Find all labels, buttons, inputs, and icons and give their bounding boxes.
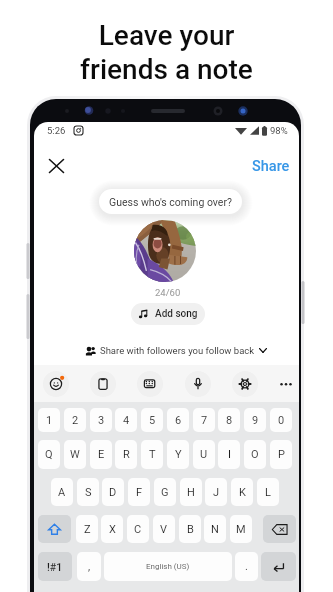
button[interactable]: 7 [193, 408, 215, 432]
staticText: H [187, 486, 195, 499]
button[interactable]: N [204, 515, 226, 543]
staticText: . [245, 560, 248, 573]
button[interactable]: D [102, 478, 124, 506]
staticText: 5:26 [47, 125, 66, 136]
button[interactable]: R [115, 440, 137, 469]
button[interactable]: V [153, 515, 175, 543]
button[interactable]: K [231, 478, 253, 506]
staticText: T [149, 448, 156, 461]
staticText: V [160, 523, 168, 536]
staticText: D [109, 486, 117, 499]
staticText: 4 [123, 414, 130, 427]
staticText: Guess who's coming over? [109, 196, 232, 208]
button[interactable]: A [51, 478, 73, 506]
button[interactable]: Settings [232, 371, 258, 397]
button[interactable]: B [179, 515, 201, 543]
staticText: Leave your friends a note [80, 19, 253, 85]
staticText: S [85, 486, 92, 499]
button[interactable]: Keyboard mode [137, 371, 163, 397]
button[interactable]: !#1 [38, 552, 72, 581]
button[interactable]: Z [76, 515, 98, 543]
button[interactable]: 9 [244, 408, 266, 432]
button[interactable]: J [205, 478, 227, 506]
staticText: , [88, 560, 91, 573]
staticText: U [200, 448, 208, 461]
button[interactable]: 1 [38, 408, 60, 432]
staticText: E [98, 448, 105, 461]
staticText: 9 [252, 414, 259, 427]
staticText: 6 [175, 414, 182, 427]
button[interactable]: Shift [38, 515, 71, 543]
staticText: G [161, 486, 169, 499]
staticText: R [123, 448, 130, 461]
staticText: Share with followers you follow back [100, 345, 255, 356]
button[interactable]: X [101, 515, 123, 543]
staticText: English (US) [146, 562, 190, 571]
button[interactable]: Y [167, 440, 189, 469]
button[interactable]: S [77, 478, 99, 506]
staticText: M [236, 523, 246, 536]
button[interactable]: 2 [64, 408, 86, 432]
button[interactable]: T [141, 440, 163, 469]
staticText: 1 [46, 414, 53, 427]
button[interactable]: O [244, 440, 266, 469]
button[interactable]: W [64, 440, 86, 469]
staticText: P [278, 448, 285, 461]
button[interactable]: I [218, 440, 240, 469]
staticText: I [228, 448, 231, 461]
staticText: O [251, 448, 259, 461]
staticText: J [213, 486, 220, 499]
button[interactable]: 6 [167, 408, 189, 432]
staticText: K [239, 486, 246, 499]
staticText: !#1 [47, 561, 63, 573]
staticText: 5 [149, 414, 156, 427]
button[interactable]: 5 [141, 408, 163, 432]
button[interactable]: M [230, 515, 252, 543]
staticText: Y [175, 448, 182, 461]
button[interactable]: H [180, 478, 202, 506]
button[interactable]: . [235, 552, 258, 581]
button[interactable]: 0 [270, 408, 292, 432]
staticText: L [265, 486, 271, 499]
staticText: 0 [278, 414, 285, 427]
button[interactable]: Emoji [43, 371, 69, 397]
staticText: 24/60 [155, 287, 181, 298]
staticText: 3 [98, 414, 105, 427]
staticText: Z [84, 523, 91, 536]
button[interactable]: U [193, 440, 215, 469]
staticText: W [70, 448, 80, 461]
staticText: C [134, 523, 142, 536]
button[interactable]: Backspace [263, 515, 296, 543]
staticText: B [187, 523, 194, 536]
staticText: Share [252, 158, 290, 175]
button[interactable]: Enter [261, 552, 296, 581]
button[interactable]: Share [250, 156, 292, 176]
staticText: 2 [72, 414, 79, 427]
button[interactable]: Share with followers you follow back [85, 343, 267, 358]
button[interactable]: P [270, 440, 292, 469]
button[interactable]: , [77, 552, 101, 581]
button[interactable]: C [127, 515, 149, 543]
button[interactable]: G [154, 478, 176, 506]
button[interactable]: English (US) [104, 552, 232, 581]
staticText: Q [45, 448, 53, 461]
staticText: X [109, 523, 116, 536]
button[interactable]: L [257, 478, 279, 506]
staticText: N [211, 523, 219, 536]
button[interactable]: 8 [218, 408, 240, 432]
staticText: A [58, 486, 66, 499]
button[interactable]: E [90, 440, 112, 469]
button[interactable]: Q [38, 440, 60, 469]
button[interactable]: 4 [115, 408, 137, 432]
staticText: 8 [226, 414, 233, 427]
staticText: F [136, 486, 143, 499]
button[interactable]: More options [273, 371, 299, 397]
button[interactable]: F [128, 478, 150, 506]
button[interactable]: 3 [90, 408, 112, 432]
button[interactable]: Add song [131, 303, 205, 325]
button[interactable]: Close [45, 155, 67, 177]
button[interactable]: Clipboard [90, 371, 116, 397]
button[interactable]: Voice input [185, 371, 211, 397]
staticText: 98% [270, 125, 288, 136]
staticText: Add song [155, 308, 198, 320]
